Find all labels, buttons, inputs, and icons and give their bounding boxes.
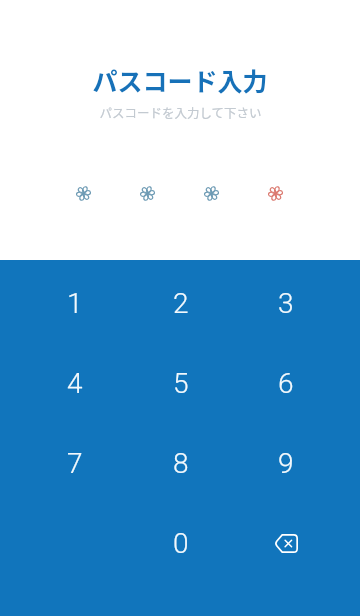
button[interactable]: 2	[128, 263, 233, 343]
staticText: パスコード入力	[92, 62, 268, 98]
staticText: 9	[278, 447, 294, 480]
staticText: 0	[173, 527, 189, 560]
button[interactable]: 8	[128, 423, 233, 503]
staticText: 4	[67, 367, 83, 400]
button[interactable]: 4	[22, 343, 128, 423]
staticText: 6	[278, 367, 294, 400]
button[interactable]: 7	[22, 423, 128, 503]
button[interactable]: 5	[128, 343, 233, 423]
staticText: 7	[67, 447, 83, 480]
staticText: 1	[67, 287, 83, 320]
button[interactable]: 3	[233, 263, 338, 343]
staticText: パスコードを入力して下さい	[99, 103, 262, 121]
button[interactable]: 1	[22, 263, 128, 343]
button[interactable]: 0	[128, 503, 233, 583]
staticText: 3	[278, 287, 294, 320]
staticText: 2	[173, 287, 189, 320]
button[interactable]: 6	[233, 343, 338, 423]
staticText: 8	[173, 447, 189, 480]
button[interactable]: 9	[233, 423, 338, 503]
staticText: 5	[173, 367, 189, 400]
button[interactable]: Backspace	[233, 503, 338, 583]
